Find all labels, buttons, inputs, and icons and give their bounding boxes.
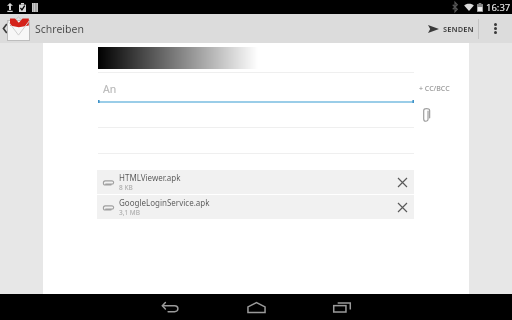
button[interactable]: More options [479, 14, 512, 43]
staticText: SENDEN [443, 24, 474, 34]
button[interactable]: Home [213, 294, 299, 320]
button[interactable]: Remove attachment [394, 174, 411, 191]
button[interactable]: Recent apps [299, 294, 385, 320]
staticText: 16:37 [486, 1, 511, 14]
other: Send [428, 25, 439, 33]
button[interactable]: GoogleLoginService.apk [97, 195, 414, 219]
button[interactable]: Navigate up [0, 14, 92, 43]
button[interactable]: An [43, 73, 414, 100]
button[interactable]: Send [420, 14, 478, 43]
staticText: 8 KB [119, 183, 133, 192]
button[interactable] [43, 47, 469, 69]
staticText: HTMLViewer.apk [119, 172, 181, 183]
button[interactable]: HTMLViewer.apk [97, 170, 414, 194]
staticText: Schreiben [35, 22, 84, 36]
other: Navigate up [3, 24, 7, 33]
staticText: An [103, 82, 117, 96]
button[interactable]: Remove attachment [394, 199, 411, 216]
staticText: GoogleLoginService.apk [119, 197, 210, 208]
button[interactable]: Back [127, 294, 213, 320]
button[interactable]: + CC/BCC [414, 73, 453, 100]
staticText: + CC/BCC [419, 84, 450, 94]
staticText: 3,1 MB [119, 208, 140, 217]
button[interactable]: Attach file [414, 103, 434, 127]
